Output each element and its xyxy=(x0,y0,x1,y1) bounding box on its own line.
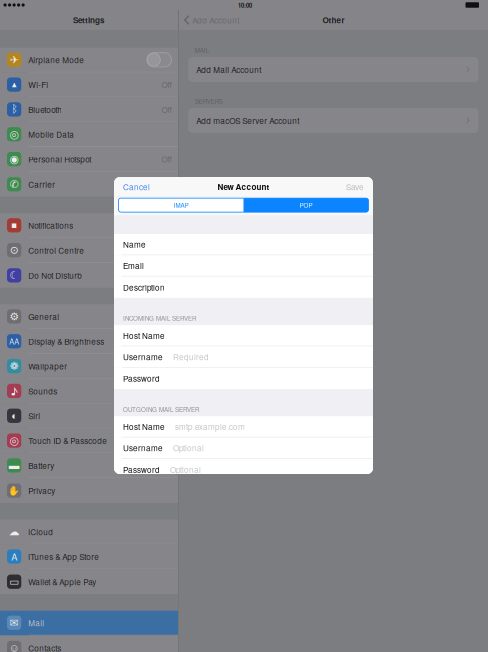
staticText: ■ xyxy=(11,220,17,230)
button[interactable]: ▬ xyxy=(0,453,178,478)
staticText: Off xyxy=(161,104,171,115)
staticText: ◐ xyxy=(11,410,17,422)
button[interactable]: ✈ xyxy=(0,48,178,72)
button[interactable]: ⊙ xyxy=(0,238,178,263)
staticText: Wallet & Apple Pay xyxy=(28,576,96,587)
staticText: ✉ xyxy=(10,617,19,629)
button[interactable]: ✋ xyxy=(0,478,178,503)
button[interactable]: A xyxy=(0,544,178,569)
button[interactable]: ◐ xyxy=(0,404,178,428)
staticText: Contacts xyxy=(28,642,61,652)
staticText: Host Name xyxy=(123,421,165,432)
button[interactable]: ▭ xyxy=(0,569,178,594)
staticText: Personal Hotspot xyxy=(28,153,91,165)
staticText: iTunes & App Store xyxy=(28,551,99,562)
staticText: Touch ID & Passcode xyxy=(28,435,107,446)
staticText: Save xyxy=(346,181,364,193)
staticText: Description xyxy=(123,281,165,293)
button[interactable]: ◉ xyxy=(0,147,178,172)
button[interactable]: Save xyxy=(341,177,373,197)
staticText: POP xyxy=(299,201,312,210)
button[interactable]: AA xyxy=(0,329,178,354)
staticText: ᛒ xyxy=(11,104,17,115)
staticText: ☺ xyxy=(9,642,20,652)
staticText: ☁ xyxy=(9,525,20,538)
staticText: ✆ xyxy=(10,178,19,190)
staticText: ☾ xyxy=(9,269,19,281)
button[interactable]: ☁ xyxy=(0,520,178,544)
button[interactable]: ■ xyxy=(0,213,178,238)
staticText: ▭ xyxy=(9,575,19,588)
staticText: Add Account xyxy=(192,14,239,26)
button[interactable]: Cancel xyxy=(114,177,155,197)
staticText: 10:00 xyxy=(238,1,252,10)
staticText: ◎ xyxy=(10,434,19,447)
button[interactable]: ❁ xyxy=(0,354,178,379)
staticText: AA xyxy=(9,336,19,346)
staticText: ◎ xyxy=(10,128,19,140)
staticText: Optional xyxy=(170,464,201,475)
staticText: ✋ xyxy=(8,485,20,496)
staticText: Required xyxy=(173,351,209,362)
button[interactable]: POP xyxy=(243,198,368,212)
staticText: Do Not Disturb xyxy=(28,270,82,281)
staticText: Username xyxy=(123,442,163,454)
staticText: Sounds xyxy=(28,385,57,397)
staticText: Off xyxy=(161,79,171,90)
staticText: iCloud xyxy=(28,526,53,537)
staticText: ◉ xyxy=(10,153,19,165)
staticText: Carrier xyxy=(28,178,55,190)
staticText: Optional xyxy=(173,442,204,454)
staticText: INCOMING MAIL SERVER xyxy=(123,314,196,323)
staticText: Mobile Data xyxy=(28,128,74,140)
button[interactable]: ♪ xyxy=(0,379,178,404)
staticText: Add macOS Server Account xyxy=(196,115,299,126)
staticText: Wi-Fi xyxy=(28,79,48,90)
button[interactable]: ⚙ xyxy=(0,304,178,329)
staticText: ▲ xyxy=(10,80,18,89)
button[interactable]: IMAP xyxy=(118,198,243,212)
staticText: Battery xyxy=(28,460,54,471)
staticText: ♪ xyxy=(11,383,18,399)
staticText: SERVERS xyxy=(195,97,223,105)
staticText: Password xyxy=(123,372,160,384)
staticText: ▬ xyxy=(9,459,20,471)
button[interactable]: ✉ xyxy=(0,611,178,635)
staticText: Username xyxy=(123,351,163,362)
button[interactable]: ☾ xyxy=(0,263,178,288)
button[interactable]: Add Account xyxy=(179,10,239,30)
staticText: Siri xyxy=(28,410,40,422)
staticText: Airplane Mode xyxy=(28,54,84,66)
staticText: Email xyxy=(123,260,144,271)
button[interactable]: ◎ xyxy=(0,428,178,453)
staticText: Other xyxy=(322,14,344,26)
button[interactable]: ᛒ xyxy=(0,97,178,122)
staticText: A xyxy=(11,550,17,563)
staticText: ❁ xyxy=(10,360,19,372)
staticText: General xyxy=(28,311,59,322)
staticText: Add Mail Account xyxy=(196,64,261,75)
button[interactable]: ☺ xyxy=(0,635,178,652)
staticText: Cancel xyxy=(123,181,150,193)
staticText: ⊙ xyxy=(10,244,19,256)
staticText: Notifications xyxy=(28,219,73,231)
staticText: Host Name xyxy=(123,330,165,341)
staticText: Wallpaper xyxy=(28,360,67,372)
staticText: Off xyxy=(161,153,171,165)
staticText: Bluetooth xyxy=(28,104,62,115)
button[interactable]: ▲ xyxy=(0,72,178,97)
staticText: MAIL xyxy=(195,46,209,54)
staticText: OUTGOING MAIL SERVER xyxy=(123,405,199,414)
staticText: Mail xyxy=(28,617,44,629)
staticText: Privacy xyxy=(28,485,55,496)
staticText: IMAP xyxy=(173,201,188,210)
button[interactable]: ◎ xyxy=(0,122,178,147)
button[interactable]: Add Mail Account xyxy=(179,57,488,82)
staticText: Settings xyxy=(73,14,105,26)
staticText: ⚙ xyxy=(9,310,19,323)
staticText: Password xyxy=(123,464,160,475)
button[interactable]: Add macOS Server Account xyxy=(179,108,488,133)
button[interactable]: ✆ xyxy=(0,172,178,197)
staticText: smtp.example.com xyxy=(175,421,245,432)
staticText: Display & Brightness xyxy=(28,335,104,347)
